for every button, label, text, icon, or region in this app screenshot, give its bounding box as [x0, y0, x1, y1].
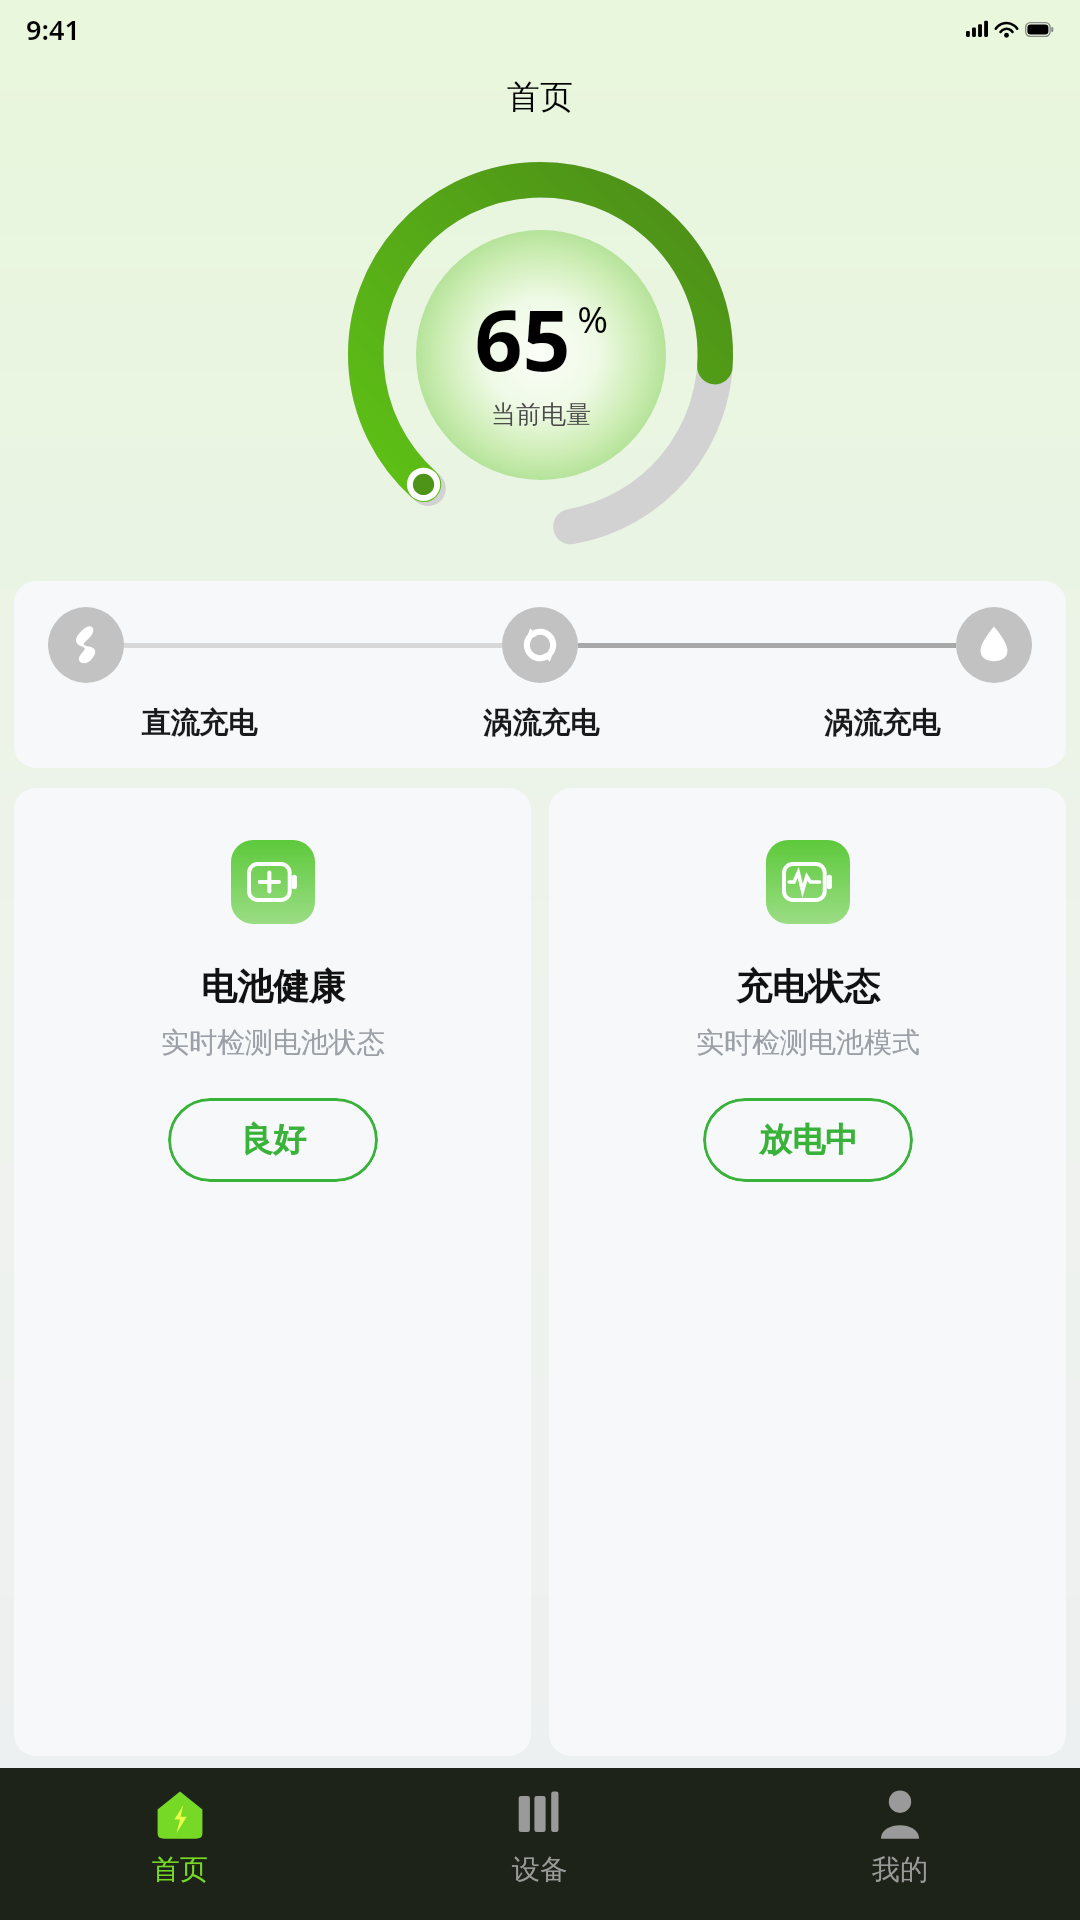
button[interactable]: DC charging	[48, 607, 124, 683]
staticText: 9:41	[26, 11, 80, 48]
staticText: 涡流充电	[824, 705, 940, 742]
button[interactable]: 充电状态	[549, 788, 1066, 1756]
staticText: 直流充电	[141, 705, 257, 742]
staticText: 良好	[240, 1119, 306, 1161]
staticText: 首页	[152, 1852, 208, 1887]
staticText: %	[577, 293, 608, 343]
button[interactable]: 首页	[0, 1768, 360, 1920]
staticText: 实时检测电池模式	[696, 1025, 920, 1060]
staticText: 首页	[507, 76, 573, 118]
button[interactable]: Eddy current charging stage	[956, 607, 1032, 683]
button[interactable]: Eddy current charging	[502, 607, 578, 683]
button[interactable]: 我的	[720, 1768, 1080, 1920]
staticText: 当前电量	[491, 399, 591, 430]
button[interactable]: 设备	[360, 1768, 720, 1920]
staticText: 我的	[872, 1852, 928, 1887]
button[interactable]: 良好	[168, 1098, 378, 1182]
staticText: 实时检测电池状态	[161, 1025, 385, 1060]
button[interactable]: DC charging	[14, 581, 1066, 768]
button[interactable]: 电池健康	[14, 788, 531, 1756]
button[interactable]: 放电中	[703, 1098, 913, 1182]
staticText: 电池健康	[201, 964, 345, 1009]
staticText: 充电状态	[736, 964, 880, 1009]
staticText: 设备	[512, 1852, 568, 1887]
staticText: 65	[474, 281, 571, 395]
staticText: 涡流充电	[483, 705, 599, 742]
staticText: 放电中	[759, 1119, 858, 1161]
